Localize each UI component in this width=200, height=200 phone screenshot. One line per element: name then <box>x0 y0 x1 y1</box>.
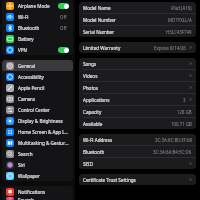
button[interactable]: Camera <box>2 93 73 104</box>
button[interactable]: Capacity <box>79 106 196 117</box>
staticText: Model Number <box>83 17 168 23</box>
staticText: Limited Warranty <box>83 45 154 51</box>
staticText: Apple Pencil <box>18 85 69 91</box>
button[interactable]: Available <box>79 118 196 129</box>
staticText: Serial Number <box>83 29 166 35</box>
staticText: Control Center <box>18 107 69 113</box>
staticText: Airplane Mode <box>18 3 58 9</box>
button[interactable]: Apple Pencil <box>2 82 73 93</box>
button[interactable]: Limited Warranty <box>79 42 196 53</box>
button[interactable]: Videos <box>79 70 196 81</box>
staticText: Sounds <box>18 197 69 200</box>
staticText: Bluetooth <box>83 149 153 155</box>
staticText: Off <box>60 14 67 20</box>
button[interactable]: VPN <box>2 44 73 55</box>
button[interactable]: Notifications <box>2 186 73 197</box>
staticText: Siri <box>18 162 69 168</box>
staticText: VPN <box>18 47 58 53</box>
button[interactable]: Bluetooth <box>79 146 196 157</box>
button[interactable]: Model Name <box>79 2 196 13</box>
button[interactable]: Multitasking & Gestures <box>2 137 73 148</box>
button[interactable]: Display & Brightness <box>2 115 73 126</box>
staticText: 100.71 GB <box>171 121 192 127</box>
staticText: Applications <box>83 97 183 103</box>
button[interactable]: Applications <box>79 94 196 105</box>
staticText: Songs <box>83 61 186 67</box>
staticText: Wi-Fi Address <box>83 137 155 143</box>
button[interactable]: Wi-Fi <box>2 11 73 22</box>
staticText: Wi-Fi <box>18 14 60 20</box>
staticText: Videos <box>83 73 186 79</box>
staticText: Display & Brightness <box>18 118 69 124</box>
staticText: 3C:3A:6A:B4:5C:D6 <box>153 149 192 155</box>
button[interactable]: Accessibility <box>2 71 73 82</box>
staticText: SEID <box>83 161 186 167</box>
staticText: Capacity <box>83 109 177 115</box>
button[interactable]: Songs <box>79 58 196 69</box>
staticText: Search <box>18 151 69 157</box>
button[interactable]: Model Number <box>79 14 196 25</box>
button[interactable]: SEID <box>79 158 196 169</box>
button[interactable]: Certificate Trust Settings <box>79 174 196 185</box>
staticText: Expires 8/14/26 <box>154 45 186 51</box>
button[interactable]: Wi-Fi Address <box>79 134 196 145</box>
button[interactable]: Sounds <box>2 197 73 200</box>
button[interactable]: Serial Number <box>79 26 196 37</box>
button[interactable]: Photos <box>79 82 196 93</box>
staticText: Notifications <box>18 189 69 195</box>
staticText: Available <box>83 121 171 127</box>
staticText: 3C:3A:6C:B0:3F:68 <box>155 137 192 143</box>
staticText: 128 GB <box>177 109 192 115</box>
staticText: Multitasking & Gestures <box>18 140 69 146</box>
staticText: Battery <box>18 36 69 42</box>
button[interactable]: Search <box>2 148 73 159</box>
button[interactable]: General <box>2 60 73 71</box>
staticText: Camera <box>18 96 69 102</box>
staticText: Wallpaper <box>18 173 69 179</box>
staticText: Certificate Trust Settings <box>83 177 186 183</box>
button[interactable]: Home Screen & App Library <box>2 126 73 137</box>
staticText: Accessibility <box>18 74 69 80</box>
staticText: Photos <box>83 85 186 91</box>
staticText: iPad (A16) <box>171 5 192 11</box>
staticText: 3 <box>183 97 186 103</box>
button[interactable]: Bluetooth <box>2 22 73 33</box>
staticText: Bluetooth <box>18 25 60 31</box>
button[interactable]: Siri <box>2 159 73 170</box>
button[interactable]: Control Center <box>2 104 73 115</box>
staticText: H3LC43F749 <box>166 29 192 35</box>
staticText: General <box>18 63 69 69</box>
staticText: Off <box>60 25 67 31</box>
button[interactable]: Wallpaper <box>2 170 73 181</box>
button[interactable]: Airplane Mode toggle <box>58 3 69 9</box>
button[interactable]: Airplane Mode <box>2 0 73 11</box>
button[interactable]: Battery <box>2 33 73 44</box>
staticText: MD7YXLL/A <box>168 17 192 23</box>
button[interactable]: VPN toggle <box>58 47 69 53</box>
staticText: Model Name <box>83 5 171 11</box>
staticText: Home Screen & App Library <box>18 129 69 135</box>
